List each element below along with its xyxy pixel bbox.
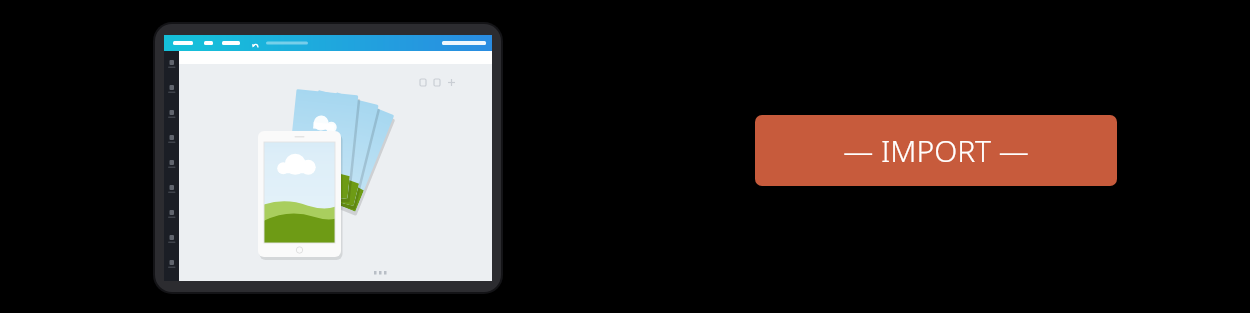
button[interactable]: — IMPORT —	[755, 115, 1117, 186]
staticText: — IMPORT —	[843, 130, 1029, 171]
